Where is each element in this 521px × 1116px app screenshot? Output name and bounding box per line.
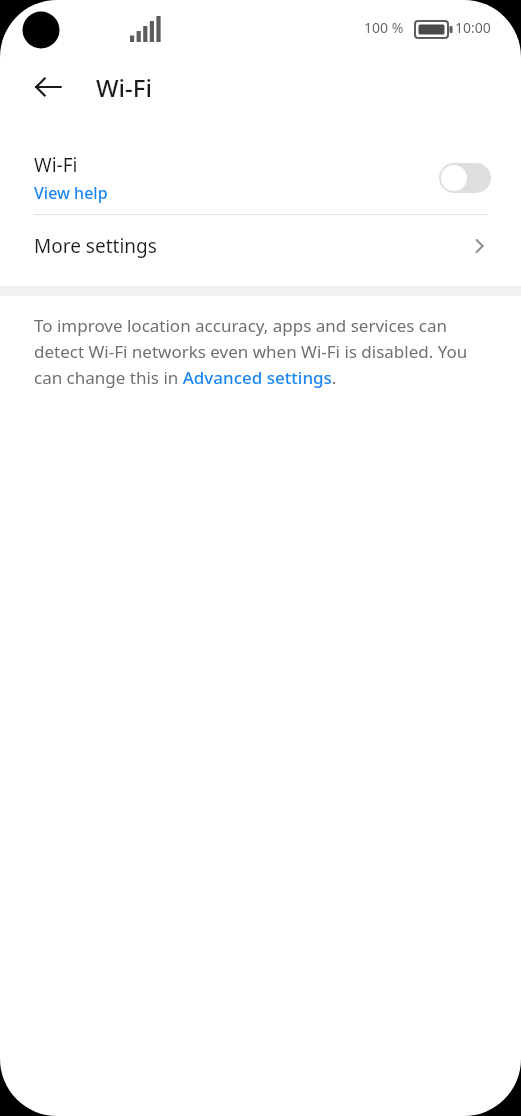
staticText: More settings	[34, 233, 469, 259]
button[interactable]: Back	[26, 65, 70, 109]
staticText: 100 %	[364, 18, 404, 37]
button[interactable]: More settings	[0, 215, 521, 277]
button[interactable]: Wi-Fi	[0, 142, 521, 214]
staticText: Wi-Fi	[96, 71, 152, 104]
button[interactable]: View help	[34, 182, 108, 204]
staticText: To improve location accuracy, apps and s…	[34, 314, 481, 389]
button[interactable]: Wi-Fi toggle, off	[439, 163, 491, 193]
staticText: 10:00	[455, 18, 491, 37]
staticText: Wi-Fi	[34, 152, 78, 178]
